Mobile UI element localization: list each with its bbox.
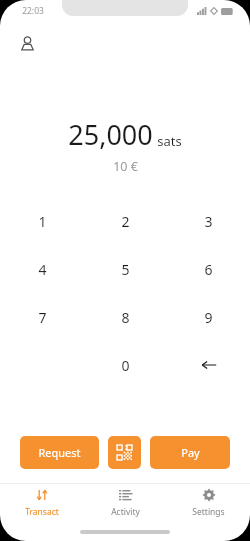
staticText: 6	[204, 260, 213, 279]
button[interactable]: 0	[84, 341, 167, 389]
button[interactable]: 5	[84, 245, 167, 293]
staticText: 8	[121, 308, 130, 327]
staticText: sats	[157, 132, 182, 150]
button[interactable]: 7	[0, 293, 84, 341]
staticText: Request	[38, 445, 81, 460]
button[interactable]: 1	[0, 197, 84, 245]
staticText: 7	[38, 308, 47, 327]
button[interactable]: Transact	[0, 483, 84, 523]
staticText: 4	[38, 260, 47, 279]
staticText: 0	[121, 356, 130, 375]
staticText: Settings	[192, 506, 225, 518]
button[interactable]: 3	[167, 197, 250, 245]
staticText: 2	[121, 212, 130, 231]
button[interactable]: Pay	[150, 436, 230, 469]
staticText: 10 €	[113, 158, 138, 175]
staticText: Pay	[181, 445, 200, 460]
button[interactable]: 2	[84, 197, 167, 245]
button[interactable]: 4	[0, 245, 84, 293]
button[interactable]: Profile	[14, 30, 40, 56]
button[interactable]: Settings	[167, 483, 250, 523]
button[interactable]: Backspace	[167, 341, 250, 389]
button[interactable]: Activity	[84, 483, 167, 523]
button[interactable]: 8	[84, 293, 167, 341]
staticText: 25,000	[68, 116, 153, 153]
staticText: Transact	[25, 506, 59, 518]
staticText: Activity	[111, 506, 140, 518]
button[interactable]: 9	[167, 293, 250, 341]
staticText: 5	[121, 260, 130, 279]
staticText: 1	[38, 212, 47, 231]
button[interactable]: Request	[20, 436, 99, 469]
button[interactable]: 6	[167, 245, 250, 293]
staticText: 3	[204, 212, 213, 231]
button[interactable]: Scan QR code	[108, 436, 141, 469]
staticText: 9	[204, 308, 213, 327]
staticText: 22:03	[22, 5, 44, 17]
